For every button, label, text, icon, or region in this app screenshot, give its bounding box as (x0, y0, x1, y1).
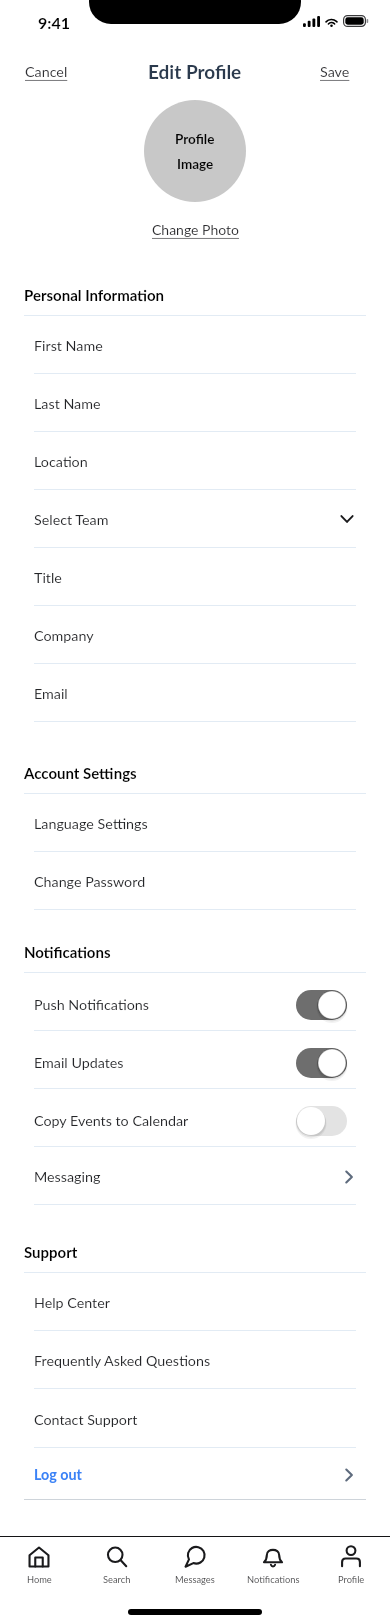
button[interactable]: Notifications (234, 1537, 312, 1585)
button[interactable]: Messages (156, 1537, 234, 1585)
button[interactable]: Contact Support (0, 1389, 390, 1448)
staticText: Cancel (25, 63, 68, 80)
staticText: Help Center (34, 1294, 110, 1311)
staticText: Personal Information (24, 286, 165, 304)
button[interactable]: Company (0, 606, 390, 664)
staticText: Image (177, 156, 214, 172)
staticText: Push Notifications (34, 996, 149, 1013)
button[interactable]: First Name (0, 316, 390, 374)
button[interactable]: Copy Events to Calendar (0, 1089, 390, 1147)
staticText: Company (34, 627, 94, 644)
staticText: Notifications (24, 943, 111, 961)
button[interactable]: Cancel (0, 53, 88, 90)
staticText: Account Settings (24, 764, 137, 782)
button[interactable]: Profile (312, 1537, 390, 1585)
staticText: Contact Support (34, 1411, 138, 1428)
staticText: Messaging (34, 1168, 101, 1185)
button[interactable]: Search (78, 1537, 156, 1585)
staticText: Change Password (34, 873, 146, 890)
button[interactable]: Log out (0, 1448, 390, 1499)
button[interactable]: Help Center (0, 1273, 390, 1331)
button[interactable]: Email (0, 664, 390, 722)
button[interactable]: Change Photo (142, 218, 249, 241)
staticText: Log out (34, 1466, 82, 1483)
staticText: Language Settings (34, 815, 148, 832)
button[interactable]: Title (0, 548, 390, 606)
button[interactable]: Language Settings (0, 794, 390, 852)
staticText: Profile (338, 1574, 365, 1585)
staticText: Support (24, 1243, 78, 1261)
button[interactable]: Location (0, 432, 390, 490)
staticText: Copy Events to Calendar (34, 1112, 189, 1129)
button[interactable]: Push Notifications (0, 973, 390, 1031)
button[interactable]: Last Name (0, 374, 390, 432)
button[interactable]: Frequently Asked Questions (0, 1331, 390, 1389)
staticText: Title (34, 569, 62, 586)
staticText: Frequently Asked Questions (34, 1352, 211, 1369)
staticText: Change Photo (152, 221, 239, 238)
staticText: Search (103, 1574, 131, 1585)
staticText: Last Name (34, 395, 101, 412)
staticText: Location (34, 453, 88, 470)
staticText: Profile (175, 131, 215, 147)
staticText: First Name (34, 337, 103, 354)
staticText: Save (320, 63, 350, 80)
button[interactable]: Change Password (0, 852, 390, 910)
staticText: 9:41 (38, 13, 70, 32)
button[interactable]: Select Team (0, 490, 390, 548)
staticText: Email (34, 685, 68, 702)
button[interactable]: Save (300, 53, 390, 90)
staticText: Home (27, 1574, 52, 1585)
staticText: Messages (175, 1574, 215, 1585)
staticText: Select Team (34, 511, 109, 528)
staticText: Notifications (247, 1574, 300, 1585)
staticText: Edit Profile (148, 60, 242, 83)
button[interactable]: Messaging (0, 1147, 390, 1205)
staticText: Email Updates (34, 1054, 124, 1071)
button[interactable]: Email Updates (0, 1031, 390, 1089)
button[interactable]: Home (0, 1537, 78, 1585)
